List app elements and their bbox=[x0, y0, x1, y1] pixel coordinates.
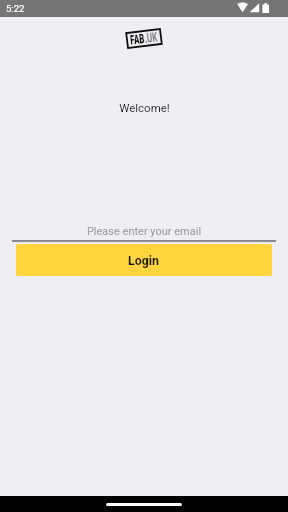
staticText: . bbox=[144, 31, 148, 46]
button[interactable]: Login bbox=[16, 244, 272, 276]
staticText: Please enter your email bbox=[12, 225, 276, 238]
staticText: UK bbox=[146, 29, 159, 46]
button[interactable]: Home bbox=[106, 503, 182, 506]
staticText: Login bbox=[128, 253, 160, 268]
button[interactable]: Please enter your email bbox=[12, 218, 276, 242]
other: Wi-Fi, mobile signal and battery status bbox=[237, 3, 269, 13]
staticText: Welcome! bbox=[119, 101, 170, 114]
other: FAB.UK logo bbox=[126, 29, 162, 48]
staticText: FAB bbox=[129, 31, 145, 48]
staticText: 5:22 bbox=[6, 3, 25, 14]
